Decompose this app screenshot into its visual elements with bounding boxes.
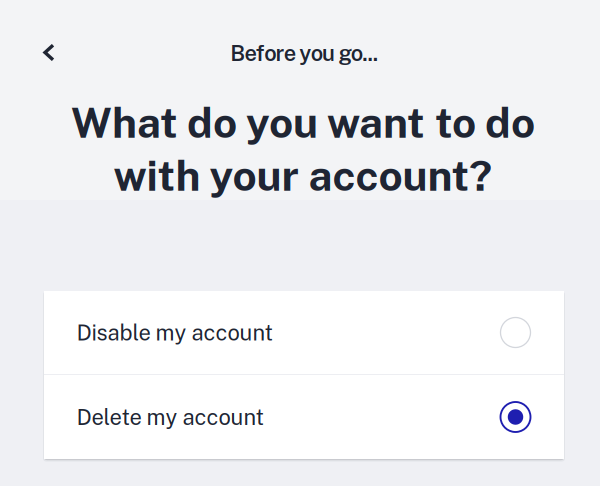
button[interactable]: Disable my account: [44, 291, 564, 374]
staticText: Delete my account: [77, 404, 265, 430]
staticText: Before you go...: [230, 40, 378, 66]
staticText: Disable my account: [77, 320, 274, 345]
staticText: with your account?: [113, 151, 492, 200]
button[interactable]: Back: [27, 30, 71, 74]
button[interactable]: Delete my account: [44, 375, 564, 459]
staticText: What do you want to do: [71, 98, 535, 147]
